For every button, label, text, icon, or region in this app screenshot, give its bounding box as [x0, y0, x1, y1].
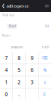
button[interactable]: 1 — [0, 76, 12, 88]
button[interactable]: . — [13, 88, 25, 100]
staticText: add expense — [6, 3, 28, 9]
button[interactable]: 5 — [13, 64, 25, 76]
staticText: 7 — [5, 54, 8, 61]
button[interactable]: Plus minus — [39, 76, 51, 88]
staticText: 0 — [5, 91, 8, 98]
button[interactable]: Delete — [39, 52, 51, 64]
button[interactable]: 7 — [0, 52, 12, 64]
staticText: 1 — [5, 78, 8, 86]
button[interactable]: Back — [0, 0, 6, 12]
staticText: ⌫ — [42, 56, 48, 60]
button[interactable]: 9 — [26, 52, 38, 64]
staticText: Food — [9, 24, 16, 28]
button[interactable]: Percent — [39, 64, 51, 76]
staticText: 3 — [30, 78, 33, 86]
button[interactable]: Clear — [39, 88, 51, 100]
staticText: 4 — [5, 66, 8, 73]
button[interactable]: 4 — [0, 64, 12, 76]
button[interactable]: Food — [7, 24, 17, 28]
staticText: search — [41, 45, 49, 49]
staticText: 2 — [18, 78, 21, 86]
staticText: . — [19, 91, 20, 98]
staticText: 9 — [30, 54, 33, 61]
staticText: ± — [44, 79, 46, 85]
staticText: Bal — [45, 24, 49, 28]
staticText: 8 — [18, 54, 21, 61]
staticText: Notes — [2, 34, 10, 37]
staticText: % — [43, 67, 46, 73]
staticText: 5 — [18, 66, 21, 73]
staticText: Discount — [11, 45, 23, 49]
staticText: 6 — [30, 66, 33, 73]
staticText: C — [43, 91, 46, 97]
button[interactable]: 6 — [26, 64, 38, 76]
staticText: Total cost — [2, 13, 14, 17]
button[interactable]: 2 — [13, 76, 25, 88]
button[interactable]: 0 — [0, 88, 12, 100]
button[interactable]: Options — [45, 1, 51, 11]
button[interactable]: 3 — [26, 76, 38, 88]
button[interactable]: 8 — [13, 52, 25, 64]
